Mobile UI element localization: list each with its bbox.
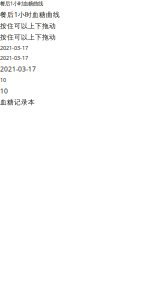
- staticText: 2021-03-17: [0, 44, 28, 51]
- staticText: 餐后1小时血糖曲线: [0, 10, 60, 19]
- staticText: 10: [0, 86, 8, 95]
- staticText: 按住可以上下拖动: [0, 33, 56, 41]
- staticText: 按住可以上下拖动: [0, 22, 56, 30]
- staticText: 2021-03-17: [0, 54, 28, 61]
- staticText: 血糖记录本: [0, 98, 35, 106]
- staticText: 餐后1小时血糖曲线: [0, 0, 43, 7]
- staticText: 2021-03-17: [0, 64, 36, 73]
- staticText: 10: [0, 76, 6, 83]
